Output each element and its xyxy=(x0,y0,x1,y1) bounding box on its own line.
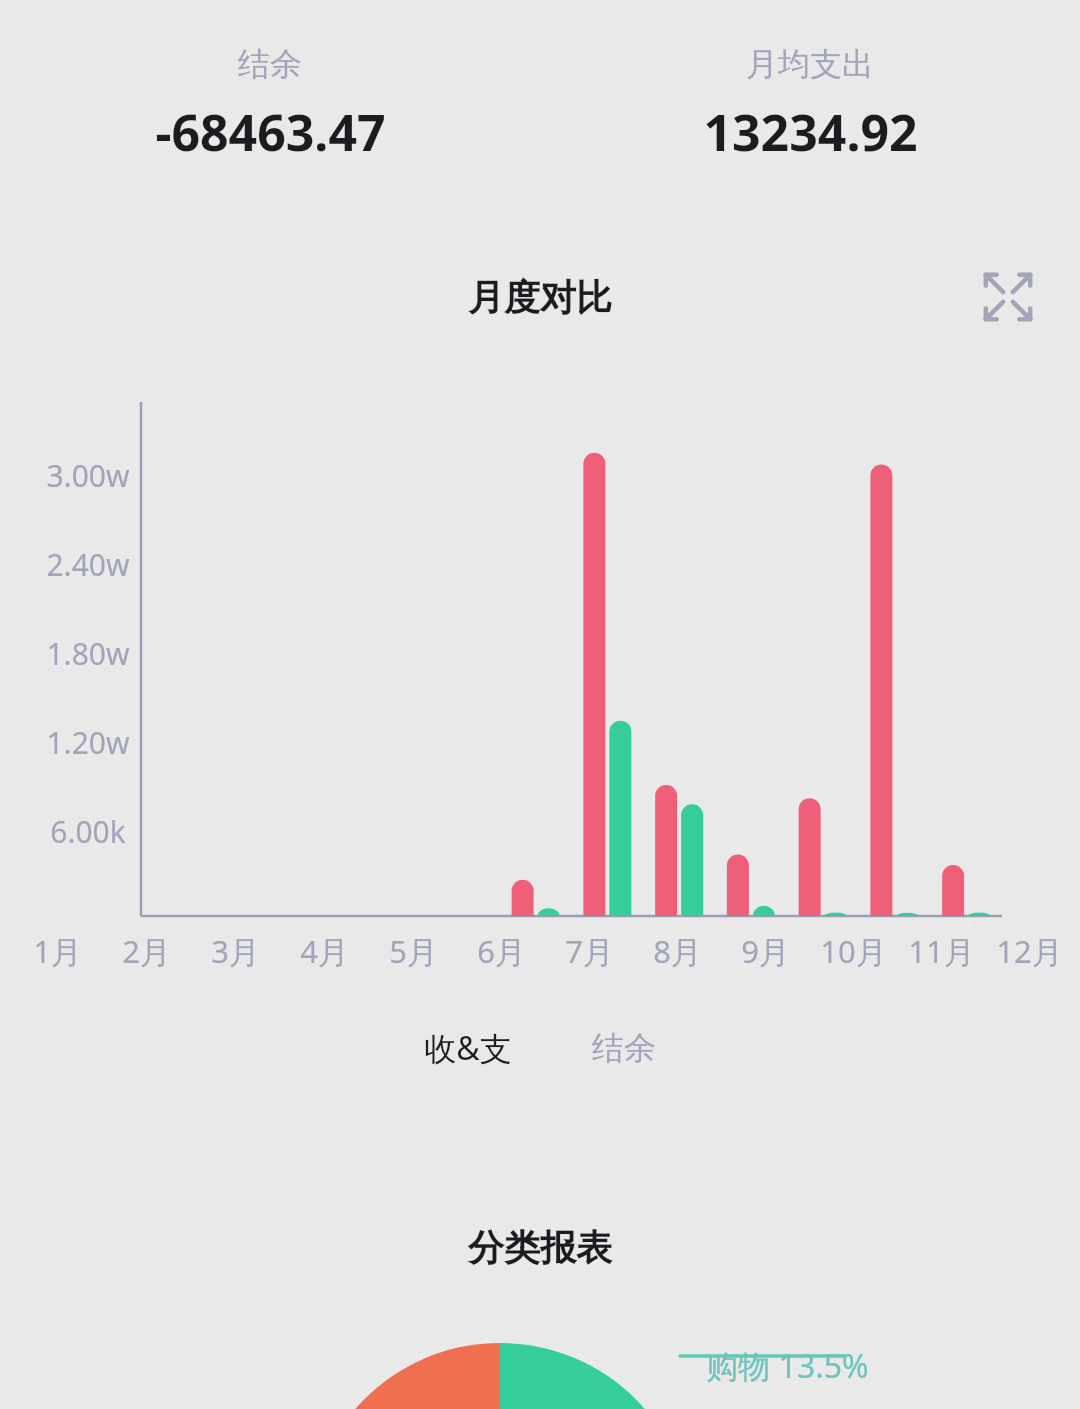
staticText: 10月 xyxy=(820,930,887,972)
button[interactable]: 结余 xyxy=(0,44,540,166)
staticText: 1.80w xyxy=(38,633,138,674)
staticText: 3.00w xyxy=(38,455,138,496)
staticText: 6.00k xyxy=(38,811,138,852)
staticText: 月度对比 xyxy=(468,275,612,320)
staticText: 1月 xyxy=(33,930,82,972)
button[interactable]: 结余 xyxy=(578,1020,670,1076)
button[interactable]: 购物 13.5% xyxy=(0,1330,1080,1409)
staticText: -68463.47 xyxy=(155,98,386,166)
staticText: 2月 xyxy=(122,930,171,972)
staticText: 2.40w xyxy=(38,544,138,585)
button[interactable]: 月均支出 xyxy=(540,44,1080,166)
staticText: 9月 xyxy=(741,930,790,972)
staticText: 12月 xyxy=(996,930,1063,972)
staticText: 购物 13.5% xyxy=(706,1344,869,1388)
staticText: 6月 xyxy=(477,930,526,972)
staticText: 4月 xyxy=(300,930,349,972)
staticText: 5月 xyxy=(389,930,438,972)
staticText: 7月 xyxy=(565,930,614,972)
staticText: 11月 xyxy=(908,930,975,972)
staticText: 月均支出 xyxy=(746,44,874,84)
staticText: 结余 xyxy=(592,1028,656,1068)
staticText: 结余 xyxy=(238,44,302,84)
staticText: 1.20w xyxy=(38,722,138,763)
staticText: 8月 xyxy=(653,930,702,972)
staticText: 收&支 xyxy=(424,1026,512,1070)
button[interactable]: 3.00w xyxy=(0,380,1080,980)
button[interactable]: Expand chart xyxy=(974,263,1042,331)
button[interactable]: 收&支 xyxy=(410,1018,526,1078)
staticText: 13234.92 xyxy=(703,98,918,166)
staticText: 分类报表 xyxy=(468,1225,612,1270)
staticText: 3月 xyxy=(211,930,260,972)
